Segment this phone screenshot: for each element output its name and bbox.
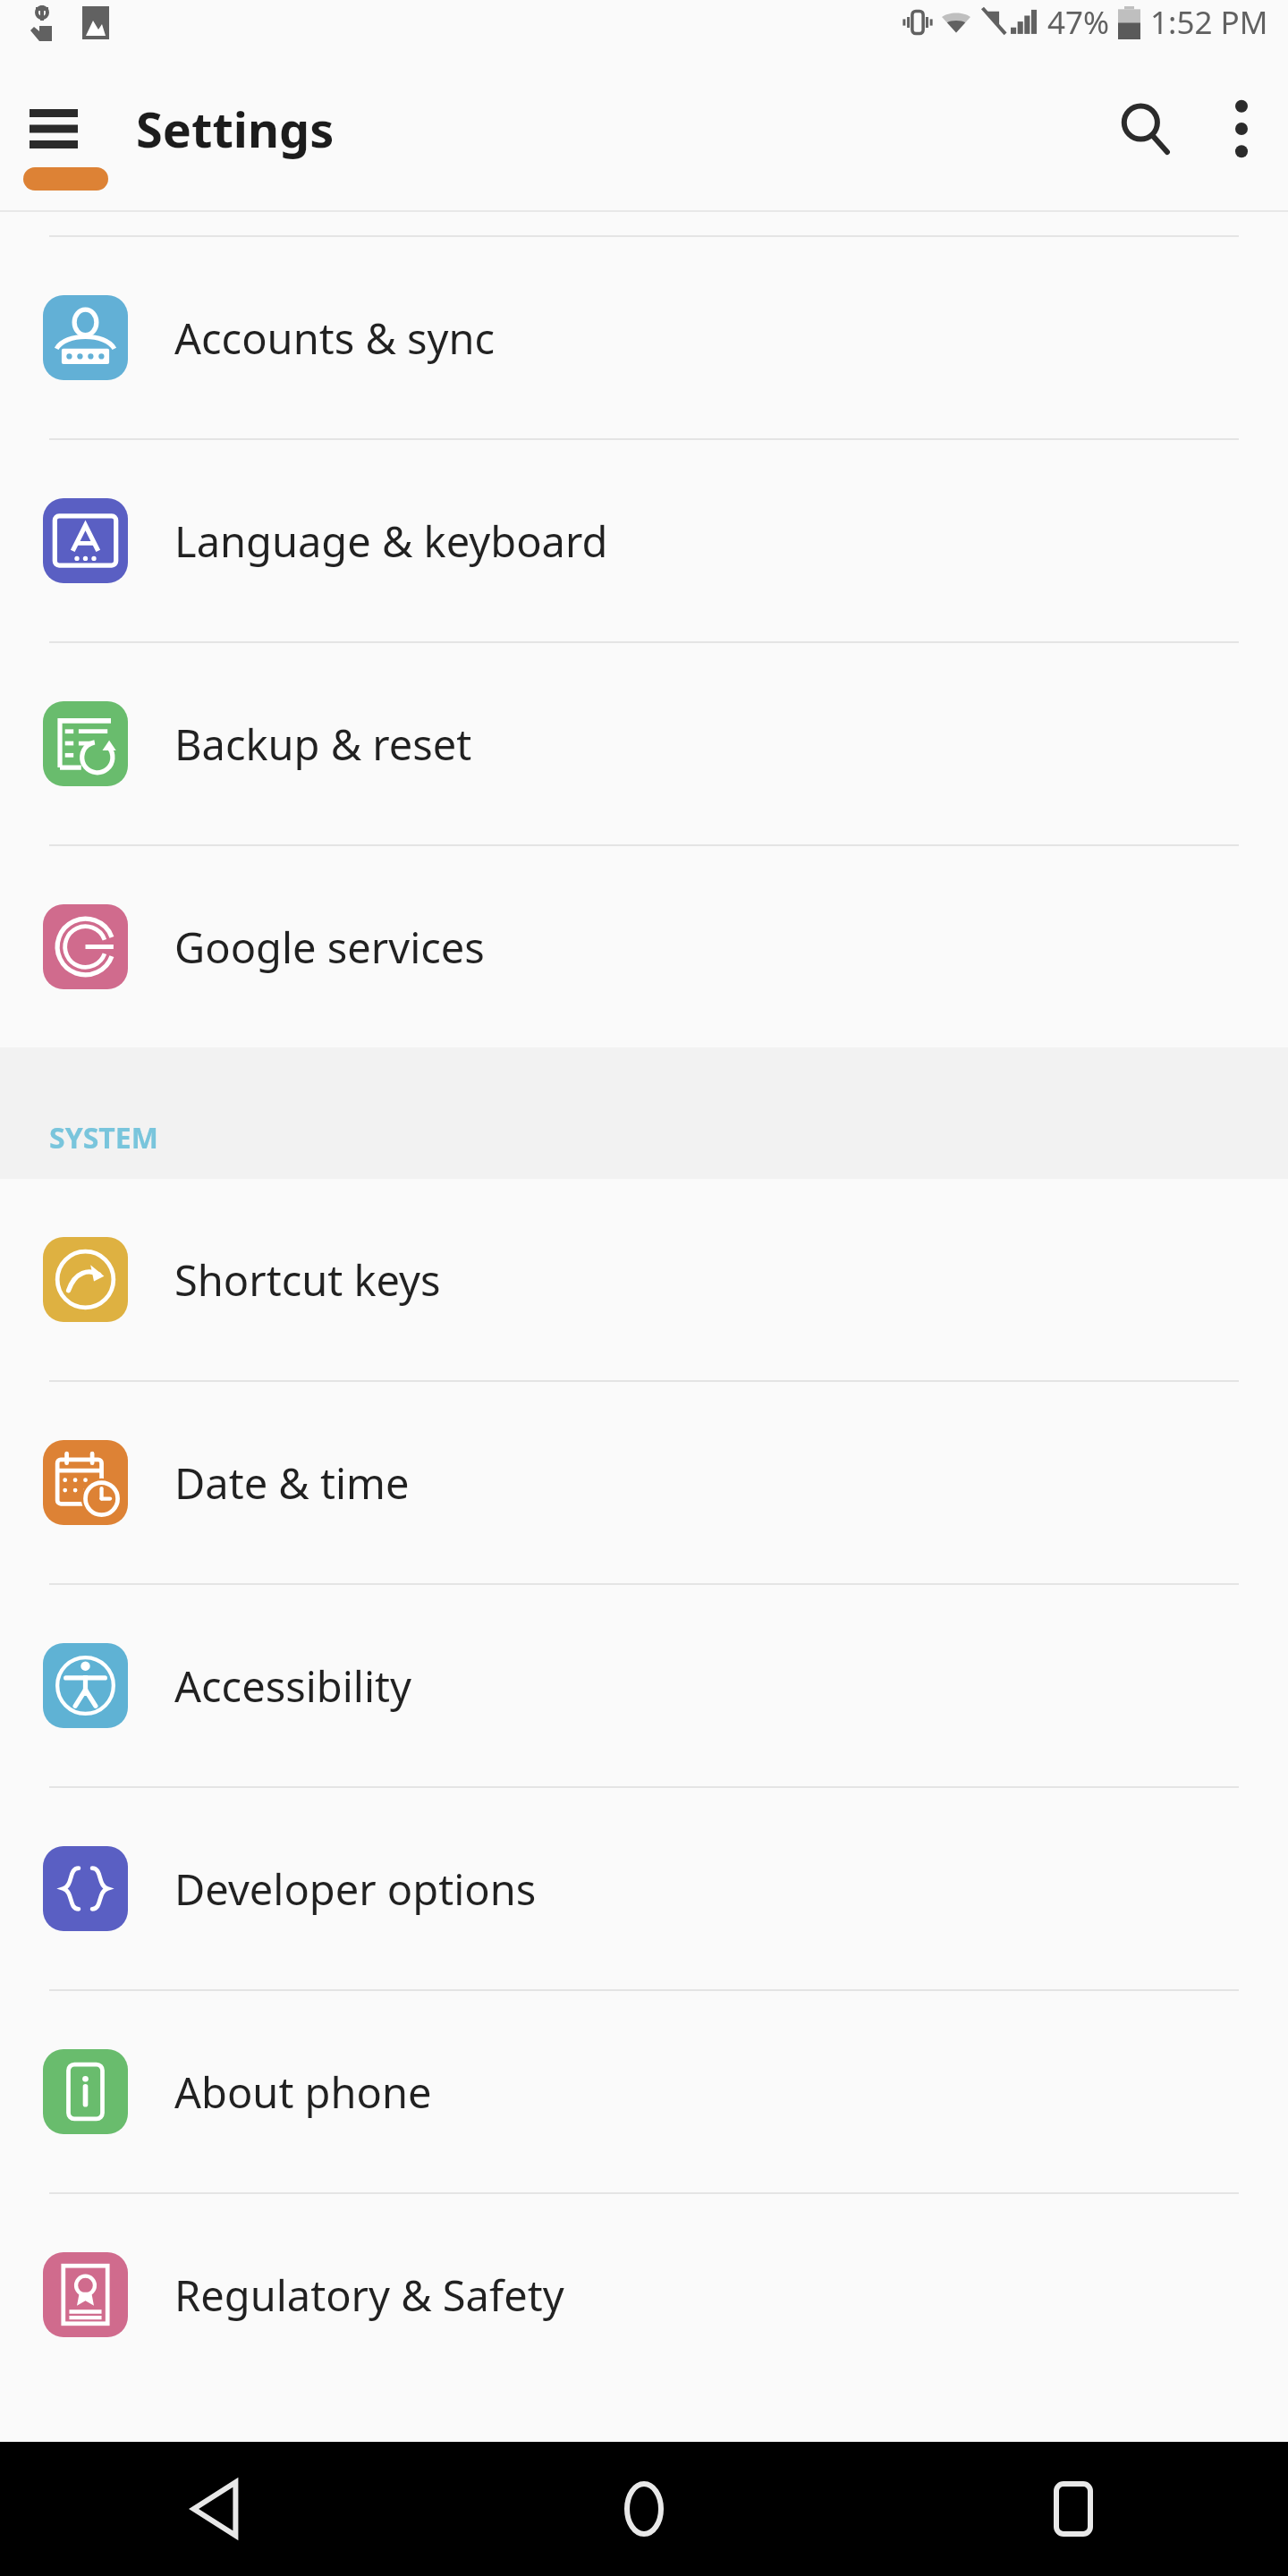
staticText: About phone xyxy=(174,2063,432,2121)
button[interactable]: Recent apps xyxy=(859,2442,1288,2576)
button[interactable]: More options xyxy=(1195,82,1288,175)
button[interactable]: Shortcut keys xyxy=(0,1179,1288,1380)
staticText: Developer options xyxy=(174,1860,537,1918)
button[interactable]: Date & time xyxy=(0,1382,1288,1583)
staticText: Shortcut keys xyxy=(174,1251,441,1309)
button[interactable]: Accounts & sync xyxy=(0,237,1288,438)
staticText: 1:52 PM xyxy=(1150,1,1268,44)
button[interactable]: Accessibility xyxy=(0,1585,1288,1786)
staticText: Settings xyxy=(136,96,335,162)
button[interactable]: Developer options xyxy=(0,1788,1288,1989)
staticText: SYSTEM xyxy=(49,1118,158,1157)
button[interactable]: Language & keyboard xyxy=(0,440,1288,641)
button[interactable]: Home xyxy=(429,2442,859,2576)
staticText: Date & time xyxy=(174,1454,410,1512)
staticText: 47% xyxy=(1047,1,1110,44)
button[interactable]: Back xyxy=(0,2442,429,2576)
button[interactable]: About phone xyxy=(0,1991,1288,2192)
staticText: Language & keyboard xyxy=(174,513,608,570)
staticText: Regulatory & Safety xyxy=(174,2267,564,2324)
staticText: Backup & reset xyxy=(174,716,472,773)
staticText: Accounts & sync xyxy=(174,309,496,367)
staticText: Google services xyxy=(174,919,485,976)
button[interactable]: Search xyxy=(1095,79,1195,179)
button[interactable]: Backup & reset xyxy=(0,643,1288,844)
staticText: Accessibility xyxy=(174,1657,412,1715)
button[interactable]: Open navigation menu xyxy=(16,91,91,166)
button[interactable]: Google services xyxy=(0,846,1288,1047)
button[interactable]: Regulatory & Safety xyxy=(0,2194,1288,2395)
